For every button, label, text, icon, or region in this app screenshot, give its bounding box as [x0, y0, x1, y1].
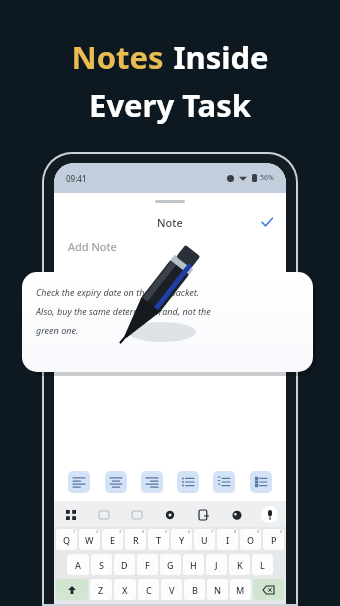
button[interactable]: B [184, 579, 205, 600]
staticText: T [156, 534, 162, 546]
button[interactable]: Save note [258, 213, 276, 231]
staticText: H [190, 559, 197, 571]
staticText: 3 [119, 529, 122, 534]
staticText: 9 [257, 529, 260, 534]
button[interactable]: H [183, 554, 204, 575]
staticText: F [145, 559, 150, 571]
button[interactable]: Bulleted list [177, 471, 199, 493]
staticText: I [226, 534, 230, 546]
button[interactable]: I [217, 529, 238, 550]
button[interactable]: T [148, 529, 169, 550]
button[interactable]: X [114, 579, 136, 600]
button[interactable]: Keyboard menu [62, 506, 79, 523]
button[interactable]: Align right [141, 471, 163, 493]
staticText: 0 [280, 529, 283, 534]
button[interactable]: O [240, 529, 261, 550]
button[interactable]: Numbered list [213, 471, 235, 493]
button[interactable]: Clipboard [195, 506, 212, 523]
button[interactable]: P [263, 529, 284, 550]
staticText: X [122, 584, 128, 596]
button[interactable]: S [91, 554, 112, 575]
button[interactable]: Shift [56, 579, 88, 600]
staticText: P [271, 534, 277, 546]
staticText: 09:41 [66, 173, 87, 184]
button[interactable]: Check the expiry date on the milk packet… [22, 272, 313, 372]
staticText: Q [63, 534, 71, 546]
button[interactable]: Backspace [253, 579, 284, 600]
staticText: 1 [73, 529, 76, 534]
staticText: 6 [188, 529, 191, 534]
button[interactable]: K [229, 554, 250, 575]
staticText: 56% [260, 173, 274, 183]
staticText: 7 [211, 529, 214, 534]
button[interactable]: E [102, 529, 123, 550]
other: Pen writing a note [108, 232, 218, 357]
staticText: C [146, 584, 152, 596]
button[interactable]: Q [56, 529, 77, 550]
button[interactable]: A [67, 554, 89, 575]
staticText: Check the expiry date on the milk packet… [36, 286, 199, 298]
staticText: W [85, 534, 94, 546]
button[interactable]: L [252, 554, 273, 575]
staticText: D [121, 559, 128, 571]
staticText: L [260, 559, 265, 571]
button[interactable]: C [138, 579, 159, 600]
button[interactable]: Z [90, 579, 112, 600]
staticText: Every Task [89, 84, 251, 126]
staticText: Note [157, 215, 183, 230]
staticText: G [167, 559, 174, 571]
button[interactable]: Stickers [128, 506, 145, 523]
button[interactable]: Settings [161, 506, 178, 523]
staticText: N [214, 584, 221, 596]
staticText: K [237, 559, 243, 571]
staticText: J [215, 559, 218, 571]
staticText: 4 [142, 529, 145, 534]
button[interactable]: Themes [228, 506, 245, 523]
button[interactable]: Align left [68, 471, 90, 493]
staticText: Notes [71, 36, 164, 78]
staticText: 5 [165, 529, 168, 534]
button[interactable]: N [207, 579, 228, 600]
button[interactable]: W [79, 529, 100, 550]
staticText: E [110, 534, 116, 546]
button[interactable]: D [114, 554, 135, 575]
staticText: B [192, 584, 198, 596]
button[interactable]: F [137, 554, 158, 575]
button[interactable]: J [206, 554, 227, 575]
button[interactable]: M [230, 579, 251, 600]
staticText: green one. [36, 324, 79, 336]
staticText: Add Note [68, 239, 117, 254]
button[interactable]: Checklist [250, 471, 272, 493]
button[interactable]: GIF [95, 506, 112, 523]
staticText: R [133, 534, 139, 546]
staticText: S [99, 559, 104, 571]
staticText: Inside [173, 36, 269, 78]
staticText: U [201, 534, 208, 546]
staticText: 8 [234, 529, 237, 534]
staticText: O [247, 534, 255, 546]
staticText: 2 [96, 529, 99, 534]
button[interactable]: V [161, 579, 182, 600]
staticText: M [236, 584, 245, 596]
staticText: Z [98, 584, 104, 596]
button[interactable]: Voice input [261, 506, 278, 523]
button[interactable]: Align center [105, 471, 127, 493]
button[interactable]: Y [171, 529, 192, 550]
button[interactable]: G [160, 554, 181, 575]
staticText: A [75, 559, 81, 571]
button[interactable]: U [194, 529, 215, 550]
staticText: Y [179, 534, 185, 546]
staticText: V [169, 584, 175, 596]
button[interactable]: R [125, 529, 146, 550]
staticText: Also, buy the same detergent brand, not … [36, 305, 211, 317]
